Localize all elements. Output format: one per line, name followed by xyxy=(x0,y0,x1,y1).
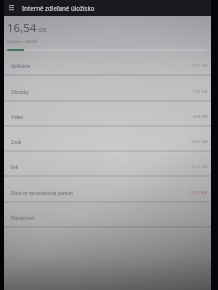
staticText: Využité z 256GB xyxy=(7,39,37,44)
staticText: 1,34 GB xyxy=(192,89,208,95)
staticText: Obrázky xyxy=(11,89,29,95)
staticText: Preskúmať xyxy=(11,215,35,221)
staticText: Aplikácie xyxy=(11,63,31,69)
staticText: Interné zdieľané úložisko xyxy=(22,4,95,12)
staticText: 16,54 xyxy=(7,20,37,36)
button[interactable]: Menu xyxy=(3,0,19,15)
button[interactable]: Iné xyxy=(4,152,211,177)
staticText: 4,47 GB xyxy=(192,164,208,170)
button[interactable]: Dáta vo vyrovnávacej pamäti xyxy=(4,178,211,203)
button[interactable]: Videá xyxy=(4,102,211,127)
staticText: Zvuk xyxy=(11,139,22,145)
staticText: 11,73 MB xyxy=(189,190,208,196)
button[interactable]: Preskúmať xyxy=(4,203,211,228)
staticText: Videá xyxy=(11,114,23,120)
button[interactable]: Obrázky xyxy=(4,77,211,102)
staticText: Iné xyxy=(11,164,18,170)
button[interactable]: Aplikácie xyxy=(4,51,211,76)
staticText: 40,3 MB xyxy=(192,139,208,145)
button[interactable]: Zvuk xyxy=(4,127,211,152)
staticText: 458 MB xyxy=(193,114,208,120)
staticText: 3,51 GB xyxy=(192,63,208,69)
staticText: Dáta vo vyrovnávacej pamäti xyxy=(11,190,73,196)
staticText: GB xyxy=(38,26,47,34)
